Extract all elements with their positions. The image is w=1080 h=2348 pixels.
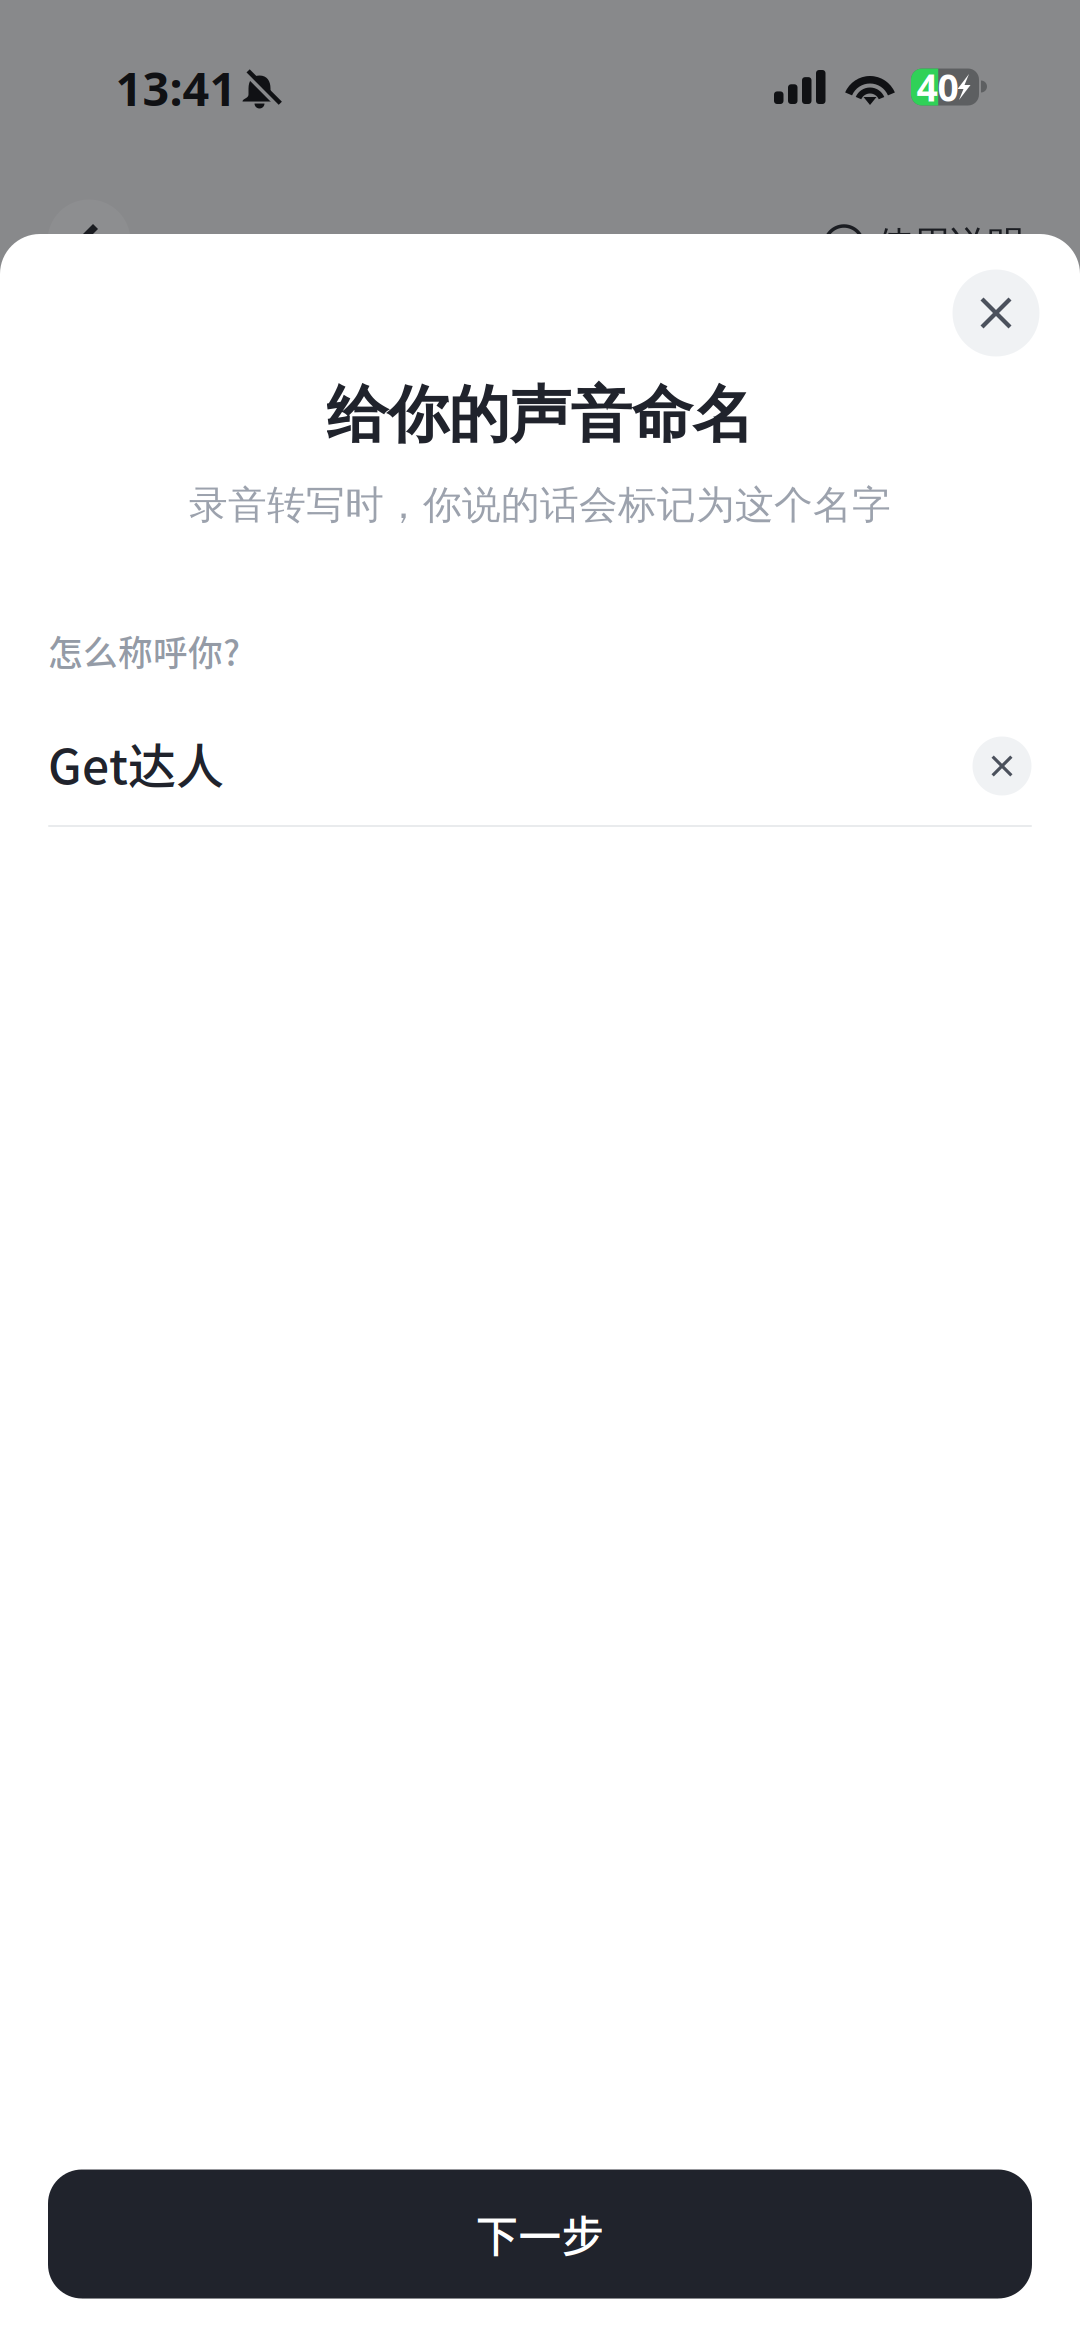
staticText: 录音转写时，你说的话会标记为这个名字 <box>189 481 891 529</box>
button[interactable]: 清除 <box>972 736 1031 795</box>
staticText: 13:41 <box>115 57 236 119</box>
button[interactable]: 返回 <box>47 199 130 282</box>
button[interactable]: 下一步 <box>48 2169 1032 2298</box>
staticText: 40 <box>916 62 958 112</box>
staticText: 下一步 <box>475 2203 604 2265</box>
staticText: 使用说明 <box>876 222 1024 268</box>
staticText: 怎么称呼你? <box>48 626 240 676</box>
button[interactable]: 使用说明 <box>824 220 1024 270</box>
button[interactable]: 关闭 <box>952 269 1039 356</box>
staticText: 给你的声音命名 <box>326 377 753 453</box>
staticText: ? <box>837 224 851 266</box>
staticText: Get达人 <box>48 728 224 798</box>
